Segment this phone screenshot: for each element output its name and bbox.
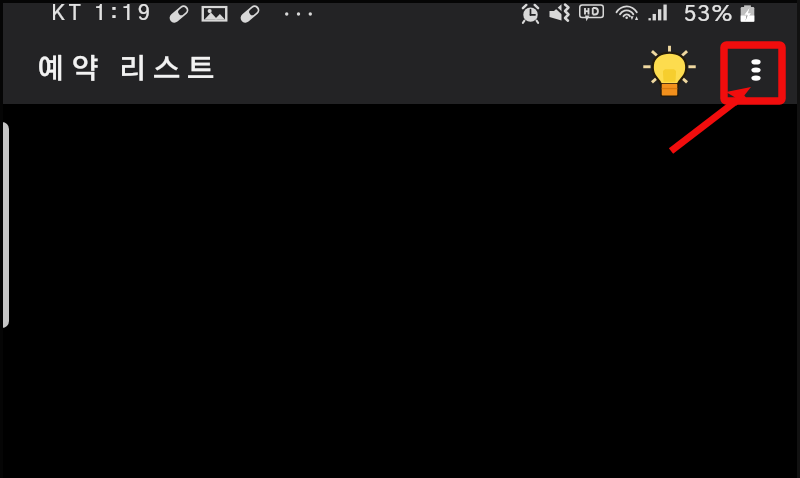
button[interactable]: Tip — [638, 36, 712, 104]
staticText: 예약 리스트 — [37, 56, 222, 84]
button[interactable]: More options — [727, 41, 785, 99]
staticText: 53% — [684, 3, 734, 25]
staticText: KT 1:19 — [51, 3, 154, 24]
